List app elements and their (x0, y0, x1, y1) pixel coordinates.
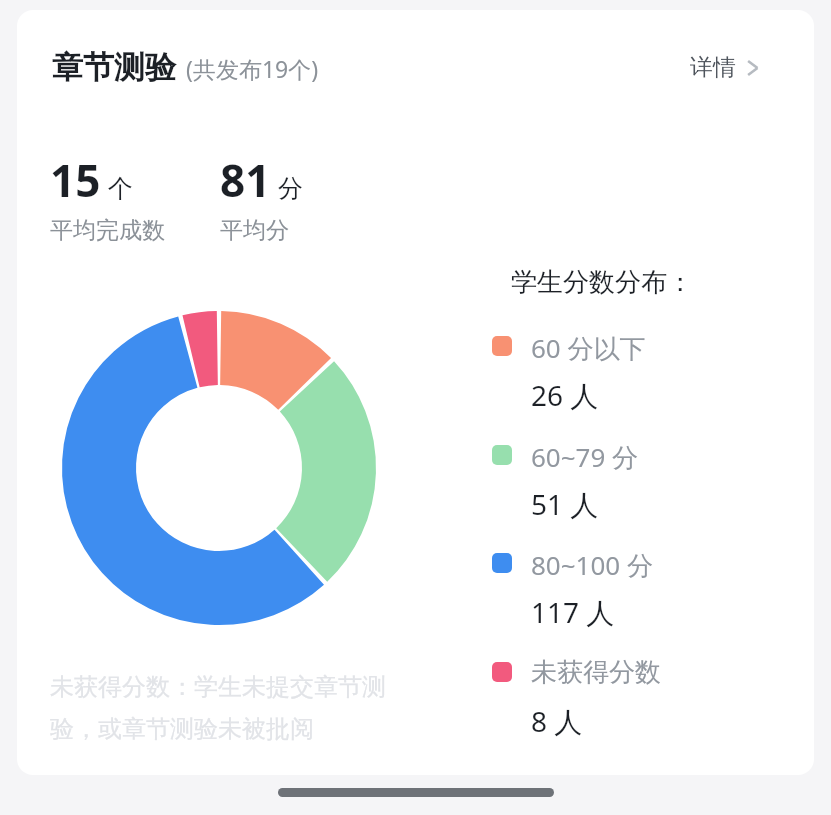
button[interactable] (490, 437, 730, 523)
staticText: 详情 (690, 53, 736, 82)
other: 60 分以下 (492, 336, 512, 356)
staticText: 学生分数分布： (511, 266, 693, 299)
button[interactable] (490, 328, 730, 414)
staticText: 81 (220, 150, 271, 210)
staticText: 平均完成数 (50, 216, 165, 245)
staticText: 51 人 (531, 485, 599, 523)
staticText: 未获得分数：学生未提交章节测验，或章节测验未被批阅 (50, 672, 432, 744)
staticText: 未获得分数 (531, 656, 661, 689)
other: 未获得分数 (492, 662, 512, 682)
staticText: 80~100 分 (531, 547, 653, 583)
staticText: (共发布19个) (186, 53, 319, 84)
other: 60~79 分 (492, 445, 512, 465)
staticText: 章节测验 (52, 48, 176, 87)
staticText: 60~79 分 (531, 439, 639, 475)
staticText: 个 (108, 173, 133, 204)
button[interactable] (490, 654, 730, 740)
staticText: 分 (278, 173, 303, 204)
button[interactable]: 详情 (690, 53, 760, 82)
staticText: 15 (50, 150, 101, 210)
staticText: 8 人 (531, 702, 583, 740)
button[interactable]: 章节测验 (52, 48, 319, 87)
other: 80~100 分 (492, 553, 512, 573)
staticText: 26 人 (531, 376, 599, 414)
staticText: 平均分 (220, 216, 289, 245)
staticText: 60 分以下 (531, 330, 646, 366)
staticText: 117 人 (531, 593, 615, 631)
button[interactable] (490, 545, 730, 631)
